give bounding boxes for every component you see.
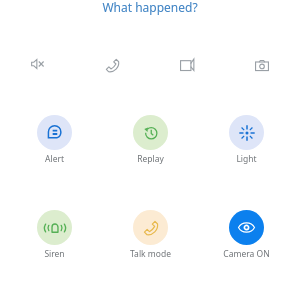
button[interactable]: Replay: [104, 115, 196, 165]
button[interactable]: Talk mode: [104, 210, 196, 260]
button[interactable]: Take photo: [247, 50, 277, 80]
button[interactable]: Video camera: [172, 50, 202, 80]
button[interactable]: Alert: [8, 115, 100, 165]
button[interactable]: Camera ON: [200, 210, 292, 260]
staticText: Replay: [137, 153, 164, 165]
staticText: Talk mode: [130, 248, 171, 260]
button[interactable]: Call: [97, 50, 127, 80]
button[interactable]: Siren: [8, 210, 100, 260]
button[interactable]: Light: [200, 115, 292, 165]
staticText: Camera ON: [223, 248, 270, 260]
button[interactable]: Mute: [22, 49, 52, 79]
staticText: Siren: [44, 248, 65, 260]
staticText: Alert: [45, 153, 64, 165]
staticText: Light: [236, 153, 257, 165]
staticText: What happened?: [102, 0, 198, 15]
